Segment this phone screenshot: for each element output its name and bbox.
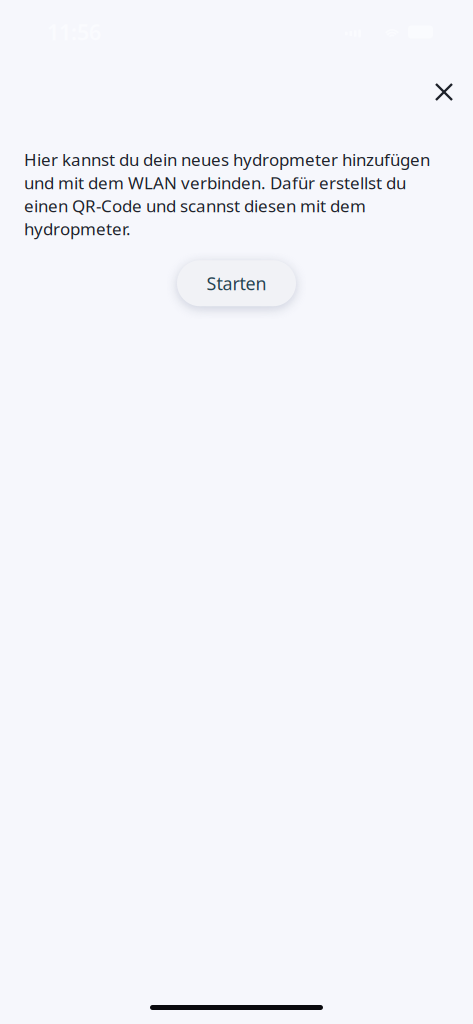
staticText: Starten: [206, 271, 266, 295]
button[interactable]: Schließen: [422, 70, 466, 114]
staticText: Hier kannst du dein neues hydropmeter hi…: [24, 148, 430, 240]
button[interactable]: Starten: [177, 260, 296, 306]
